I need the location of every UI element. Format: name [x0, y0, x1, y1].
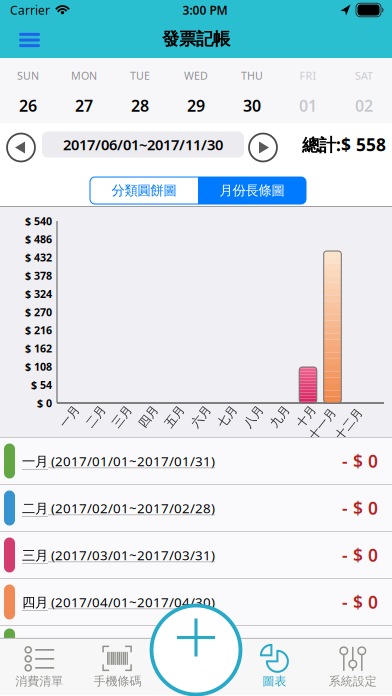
staticText: 28 [131, 95, 149, 116]
button[interactable]: 三月 (2017/03/01~2017/03/31) [0, 532, 392, 578]
staticText: 五月 [163, 409, 187, 424]
staticText: 30 [243, 95, 261, 116]
staticText: MON [71, 68, 97, 83]
staticText: 手機條碼 [94, 674, 142, 689]
staticText: 二月 (2017/02/01~2017/02/28) [22, 499, 215, 517]
staticText: 系統設定 [329, 674, 377, 689]
staticText: 月份長條圖 [219, 182, 284, 199]
staticText: $ 216 [25, 323, 52, 337]
button[interactable]: 圖表 [235, 639, 314, 695]
staticText: 01 [299, 95, 317, 116]
staticText: $ 486 [25, 232, 52, 246]
button[interactable]: 消費清單 [0, 639, 78, 695]
staticText: 分類圓餅圖 [111, 182, 176, 199]
staticText: 二月 [84, 409, 108, 424]
staticText: TUE [130, 68, 150, 83]
staticText: 消費清單 [15, 674, 63, 689]
staticText: 總計:$ 558 [302, 133, 386, 156]
staticText: $ 324 [25, 287, 52, 301]
button[interactable]: 2017/06/01~2017/11/30 [42, 131, 244, 157]
staticText: 六月 [189, 409, 213, 424]
staticText: $ 0 [37, 396, 52, 410]
staticText: 02 [355, 95, 373, 116]
button[interactable]: 系統設定 [314, 639, 392, 695]
staticText: $ 270 [25, 305, 52, 319]
staticText: THU [241, 68, 263, 83]
staticText: 十月 [294, 409, 318, 424]
staticText: $ 162 [25, 341, 52, 355]
staticText: 七月 [215, 409, 239, 424]
staticText: 27 [75, 95, 93, 116]
staticText: $ 378 [25, 268, 52, 283]
button[interactable]: 下一期 [249, 130, 277, 158]
button[interactable]: 分類圓餅圖 [90, 177, 198, 204]
staticText: 十一月 [304, 417, 340, 431]
button[interactable]: 四月 (2017/04/01~2017/04/30) [0, 579, 392, 625]
staticText: 一月 (2017/01/01~2017/01/31) [22, 452, 215, 470]
staticText: 三月 (2017/03/01~2017/03/31) [22, 546, 215, 564]
staticText: - $ 0 [342, 543, 378, 566]
button[interactable]: 二月 (2017/02/01~2017/02/28) [0, 485, 392, 531]
staticText: 八月 [242, 409, 266, 424]
staticText: 2017/06/01~2017/11/30 [63, 135, 223, 154]
button[interactable]: 一月 (2017/01/01~2017/01/31) [0, 438, 392, 484]
staticText: 十二月 [331, 417, 367, 431]
staticText: 3:00 PM [182, 2, 227, 18]
staticText: - $ 0 [342, 496, 378, 519]
staticText: 發票記帳 [162, 28, 230, 50]
staticText: $ 108 [25, 359, 52, 374]
staticText: SUN [17, 68, 39, 83]
staticText: 29 [187, 95, 205, 116]
staticText: FRI [299, 68, 316, 83]
staticText: WED [184, 68, 208, 83]
staticText: 四月 (2017/04/01~2017/04/30) [22, 593, 215, 611]
button[interactable]: 新增發票 [151, 605, 240, 694]
staticText: - $ 0 [342, 590, 378, 613]
staticText: 26 [19, 95, 37, 116]
staticText: 圖表 [262, 674, 286, 689]
staticText: 三月 [110, 409, 134, 424]
staticText: 一月 [57, 409, 81, 424]
button[interactable]: 上一期 [7, 130, 35, 158]
staticText: $ 432 [25, 250, 52, 264]
button[interactable]: 選單 [0, 31, 40, 47]
button[interactable]: 月份長條圖 [198, 177, 306, 204]
staticText: SAT [355, 68, 373, 83]
staticText: $ 540 [25, 214, 52, 228]
staticText: Carrier [10, 2, 50, 18]
staticText: 四月 [136, 409, 160, 424]
button[interactable]: 手機條碼 [78, 639, 157, 695]
staticText: 九月 [268, 409, 292, 424]
staticText: $ 54 [31, 378, 52, 392]
staticText: - $ 0 [342, 449, 378, 472]
